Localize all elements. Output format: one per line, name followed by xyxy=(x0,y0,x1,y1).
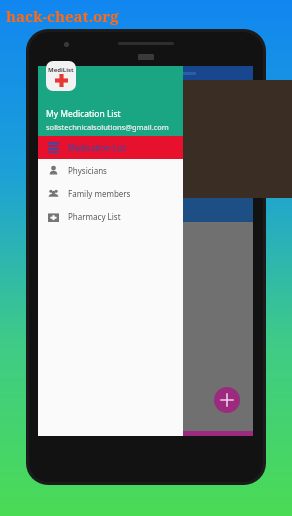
button[interactable]: Medication List xyxy=(38,136,183,159)
staticText: Physicians xyxy=(68,165,107,176)
staticText: Pharmacy List xyxy=(68,211,121,222)
button[interactable]: Family members xyxy=(38,182,183,205)
staticText: gh xyxy=(42,154,57,170)
button[interactable]: Pharmacy List xyxy=(38,205,183,228)
staticText: MediList xyxy=(48,66,74,74)
staticText: Share xyxy=(50,203,82,218)
button[interactable]: Physicians xyxy=(38,159,183,182)
staticText: My Medication List xyxy=(46,108,121,120)
staticText: solistechnicalsolutions@gmail.com xyxy=(46,122,169,132)
staticText: Medication List xyxy=(68,142,127,153)
staticText: Family members xyxy=(68,188,131,199)
button[interactable]: Add medication xyxy=(214,387,240,413)
staticText: a xyxy=(44,84,62,125)
staticText: hack-cheat.org xyxy=(6,6,119,26)
